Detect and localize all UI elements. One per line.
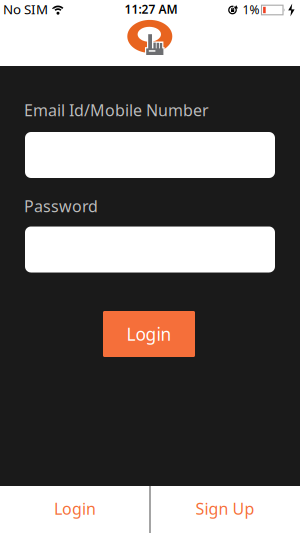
staticText: Login (54, 498, 96, 519)
staticText: Email Id/Mobile Number (24, 99, 209, 121)
staticText: 1% (242, 1, 259, 17)
button[interactable]: Login (1, 485, 149, 532)
staticText: Password (24, 195, 98, 217)
button[interactable]: Sign Up (151, 485, 299, 532)
button[interactable]: Login (103, 311, 195, 357)
staticText: 11:27 AM (124, 1, 177, 17)
button[interactable] (25, 132, 275, 178)
button[interactable] (25, 226, 275, 272)
staticText: No SIM (3, 0, 48, 18)
staticText: Login (126, 322, 171, 345)
staticText: Sign Up (195, 498, 254, 519)
